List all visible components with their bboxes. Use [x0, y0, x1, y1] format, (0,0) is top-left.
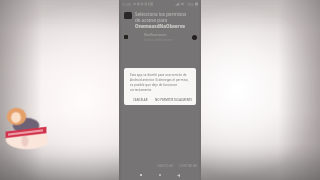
staticText: NO PERMITIR IGUALMENTE [155, 98, 193, 102]
staticText: Esta app se diseñó para una versión de A… [130, 73, 191, 92]
staticText: acceso notificaciones [144, 38, 173, 42]
staticText: 76% [187, 2, 194, 7]
button[interactable]: CONTINUAR [179, 164, 198, 168]
button[interactable]: CANCELAR [157, 164, 173, 168]
button[interactable]: NO PERMITIR IGUALMENTE [153, 97, 195, 103]
other: Back [177, 174, 180, 177]
button[interactable]: Notificaciones [119, 31, 201, 43]
button[interactable]: CANCELAR [131, 97, 150, 103]
staticText: Notificaciones [144, 32, 167, 37]
staticText: OnemeasdNaObserve [135, 23, 186, 29]
staticText: Selecciona los permisos [135, 11, 187, 17]
staticText: 11:49 [122, 2, 131, 7]
staticText: CANCELAR [133, 98, 148, 102]
staticText: de acceso para [135, 17, 168, 23]
